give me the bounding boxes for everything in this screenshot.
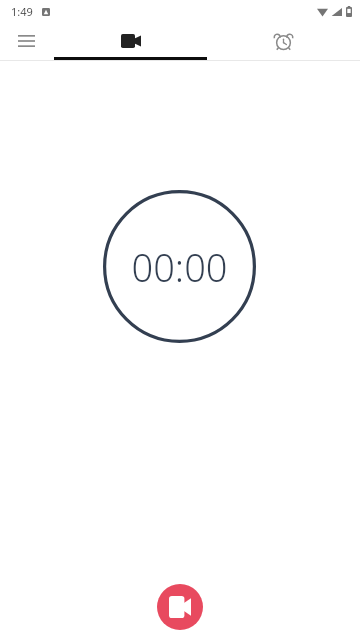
button[interactable]: Record video — [157, 584, 203, 630]
button[interactable]: 00:00 — [103, 190, 256, 343]
staticText: 1:49 — [11, 4, 33, 19]
button[interactable]: Alarms tab — [255, 22, 311, 60]
staticText: 00:00 — [131, 241, 228, 293]
button[interactable]: Open navigation menu — [8, 23, 44, 59]
button[interactable]: Video tab — [54, 22, 207, 60]
